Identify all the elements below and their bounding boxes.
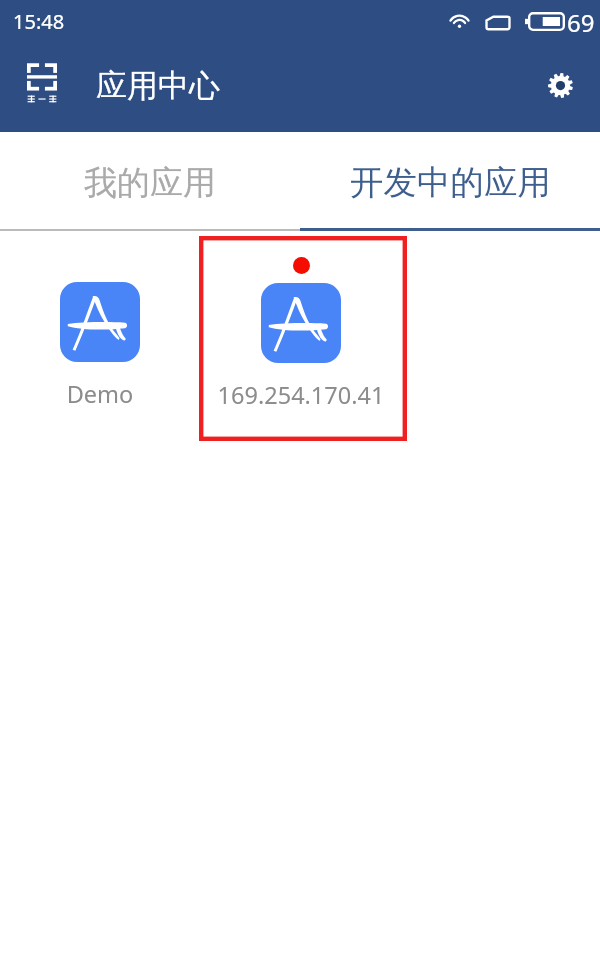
button[interactable]: Scan [14,56,70,112]
button[interactable]: Settings [537,61,583,107]
staticText: 我的应用 [84,162,216,204]
staticText: 69 [567,6,595,39]
staticText: 应用中心 [96,66,220,105]
button[interactable]: 我的应用 [0,132,300,231]
staticText: 开发中的应用 [350,162,551,204]
button[interactable]: 169.254.170.41 [211,248,391,408]
staticText: Demo [10,378,190,410]
staticText: 169.254.170.41 [211,379,391,411]
button[interactable]: 开发中的应用 [300,132,600,231]
button[interactable]: Demo [10,247,190,407]
staticText: 15:48 [13,8,65,35]
